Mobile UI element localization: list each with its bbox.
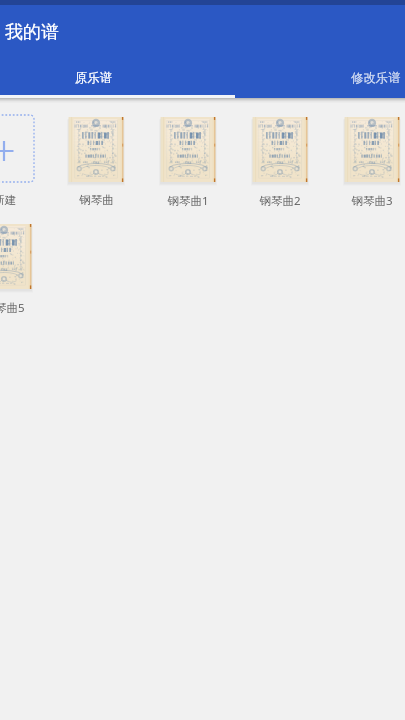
button[interactable]: 钢琴曲 xyxy=(50,113,142,210)
button[interactable]: 新建 xyxy=(0,113,50,210)
button[interactable]: 修改乐谱 xyxy=(241,64,405,92)
staticText: 钢琴曲3 xyxy=(351,193,393,209)
button[interactable]: 钢琴曲5 xyxy=(0,220,50,317)
staticText: 修改乐谱 xyxy=(351,70,401,86)
button[interactable]: 钢琴曲2 xyxy=(234,113,326,210)
staticText: 钢琴曲 xyxy=(79,193,114,207)
button[interactable]: 钢琴曲3 xyxy=(326,113,405,210)
staticText: 原乐谱 xyxy=(75,70,113,86)
staticText: 新建 xyxy=(0,193,16,207)
other: 新建 xyxy=(0,115,34,182)
staticText: 钢琴曲5 xyxy=(0,300,25,316)
staticText: 钢琴曲1 xyxy=(167,193,209,209)
staticText: 钢琴曲2 xyxy=(259,193,301,209)
button[interactable]: 钢琴曲1 xyxy=(142,113,234,210)
staticText: 我的谱 xyxy=(5,21,59,44)
button[interactable]: 原乐谱 xyxy=(0,64,229,92)
